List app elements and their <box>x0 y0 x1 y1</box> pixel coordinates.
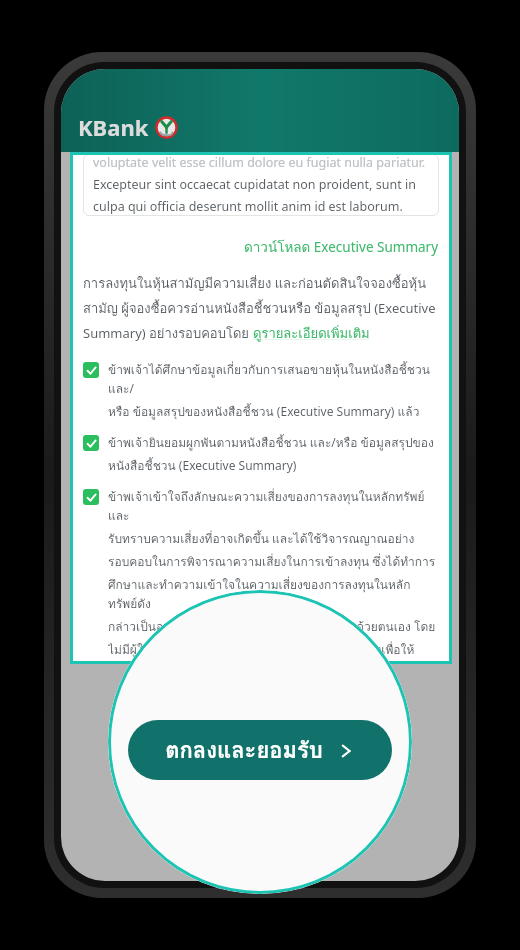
staticText: ข้าพเจ้าเข้าใจถึงลักษณะความเสี่ยงของการล… <box>108 487 439 525</box>
staticText: รอบคอบในการพิจารณาความเสี่ยงในการเข้าลงท… <box>108 552 436 571</box>
staticText: การลงทุนในหุ้นสามัญมีความเสี่ยง และก่อนต… <box>83 273 427 294</box>
staticText: หนังสือชี้ชวน (Executive Summary) <box>108 456 297 475</box>
staticText: สามัญ ผู้จองซื้อควรอ่านหนังสือชี้ชวนหรือ… <box>83 298 436 319</box>
staticText: ข้าพเจ้ายินยอมผูกพันตามหนังสือชี้ชวน และ… <box>108 433 434 452</box>
staticText: ข้าพเจ้าได้ศึกษาข้อมูลเกี่ยวกับการเสนอขา… <box>108 360 439 398</box>
button[interactable]: ตกลงและยอมรับ <box>128 720 392 780</box>
staticText: KBank <box>78 112 149 142</box>
button[interactable]: Accepted <box>83 489 99 505</box>
button[interactable]: KBank home <box>78 112 178 142</box>
button[interactable]: Accepted <box>83 435 99 451</box>
button[interactable]: ดาวน์โหลด Executive Summary <box>244 236 439 257</box>
staticText: กล่าวเป็นอย่างดี ข้าพเจ้าได้ตัดสินใจในกา… <box>108 617 436 636</box>
staticText: ไม่มีผู้ใดหรือเจ้าหน้าที่ใดให้คำแนะนำชี้… <box>108 640 439 664</box>
staticText: ศึกษาและทำความเข้าใจในความเสี่ยงของการลง… <box>108 575 439 613</box>
staticText: culpa qui officia deserunt mollit anim i… <box>93 198 403 215</box>
staticText: Excepteur sint occaecat cupidatat non pr… <box>93 176 416 193</box>
staticText: หรือ ข้อมูลสรุปของหนังสือชี้ชวน (Executi… <box>108 402 420 421</box>
staticText: ดูรายละเอียดเพิ่มเติม <box>253 323 370 344</box>
button[interactable]: Accepted <box>83 362 99 378</box>
button[interactable]: ดูรายละเอียดเพิ่มเติม <box>253 323 370 344</box>
staticText: Summary) อย่างรอบคอบโดย <box>83 323 253 344</box>
staticText: ดาวน์โหลด Executive Summary <box>244 236 439 257</box>
staticText: ตกลงและยอมรับ <box>165 733 323 768</box>
staticText: voluptate velit esse cillum dolore eu fu… <box>93 154 426 171</box>
staticText: รับทราบความเสี่ยงที่อาจเกิดขึ้น และได้ใช… <box>108 529 415 548</box>
